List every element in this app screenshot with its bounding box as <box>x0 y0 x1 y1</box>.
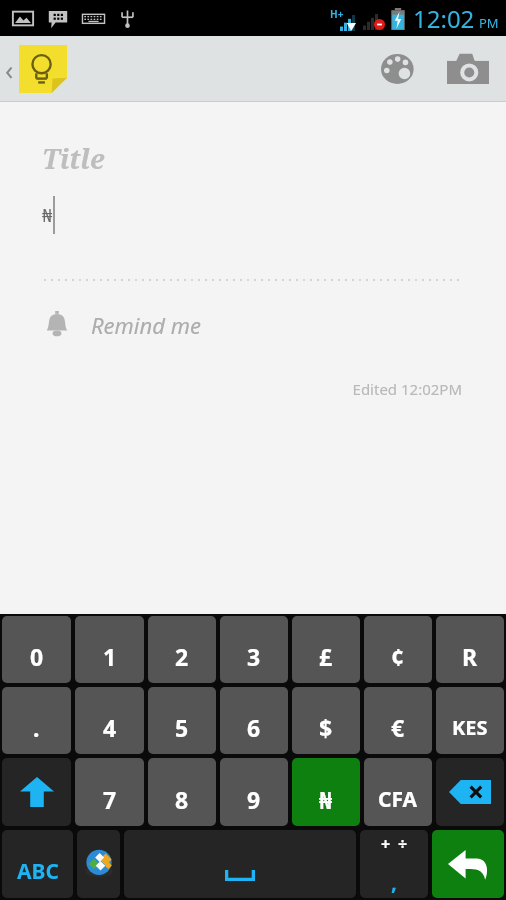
staticText: ¢ <box>391 641 405 672</box>
button[interactable]: € <box>364 687 432 754</box>
button[interactable]: 9 <box>220 758 288 826</box>
button[interactable]: Space <box>124 830 356 898</box>
staticText: ‹ <box>5 51 14 88</box>
staticText: ₦ <box>319 784 333 815</box>
button[interactable]: £ <box>292 616 360 683</box>
staticText: ABC <box>17 857 59 886</box>
button[interactable]: Navigate up <box>0 41 75 97</box>
staticText: 6 <box>247 712 261 743</box>
button[interactable]: 2 <box>148 616 216 683</box>
button[interactable]: More symbols <box>360 830 428 898</box>
button[interactable]: Add photo <box>430 36 506 102</box>
staticText: + <box>381 833 391 855</box>
staticText: Remind me <box>91 310 201 340</box>
staticText: H+ <box>330 7 344 21</box>
button[interactable]: 4 <box>75 687 144 754</box>
staticText: 4 <box>103 712 117 743</box>
button[interactable]: Remind me <box>0 301 506 349</box>
button[interactable]: ₦ <box>42 193 55 237</box>
staticText: KES <box>452 714 488 741</box>
staticText: 12:02 <box>413 2 475 35</box>
button[interactable]: Enter <box>432 830 504 898</box>
button[interactable]: ABC <box>2 830 73 898</box>
button[interactable]: 3 <box>220 616 288 683</box>
button[interactable]: 6 <box>220 687 288 754</box>
staticText: . <box>33 712 40 743</box>
staticText: € <box>391 712 405 743</box>
staticText: $ <box>319 712 333 743</box>
staticText: ₦ <box>42 203 53 228</box>
staticText: R <box>462 641 478 672</box>
staticText: CFA <box>378 785 418 814</box>
button[interactable]: . <box>2 687 71 754</box>
staticText: PM <box>479 14 499 32</box>
button[interactable]: KES <box>436 687 504 754</box>
staticText: 9 <box>247 784 261 815</box>
button[interactable]: Delete <box>436 758 504 826</box>
staticText: 2 <box>175 641 189 672</box>
staticText: 7 <box>103 784 117 815</box>
button[interactable]: 0 <box>2 616 71 683</box>
button[interactable]: ₦ <box>292 758 360 826</box>
staticText: 3 <box>247 641 261 672</box>
staticText: ÷ <box>398 833 408 855</box>
button[interactable]: Title <box>42 140 105 177</box>
staticText: 1 <box>103 641 117 672</box>
button[interactable]: ¢ <box>364 616 432 683</box>
staticText: , <box>391 868 397 897</box>
button[interactable]: CFA <box>364 758 432 826</box>
button[interactable]: Change color <box>366 36 430 102</box>
staticText: 5 <box>175 712 189 743</box>
button[interactable]: Change input method <box>77 830 120 898</box>
staticText: £ <box>319 641 333 672</box>
button[interactable]: 7 <box>75 758 144 826</box>
button[interactable]: Shift <box>2 758 71 826</box>
staticText: 8 <box>175 784 189 815</box>
button[interactable]: 1 <box>75 616 144 683</box>
button[interactable]: 5 <box>148 687 216 754</box>
button[interactable]: 8 <box>148 758 216 826</box>
staticText: 0 <box>30 641 44 672</box>
staticText: Edited 12:02PM <box>0 379 462 399</box>
button[interactable]: $ <box>292 687 360 754</box>
button[interactable]: R <box>436 616 504 683</box>
